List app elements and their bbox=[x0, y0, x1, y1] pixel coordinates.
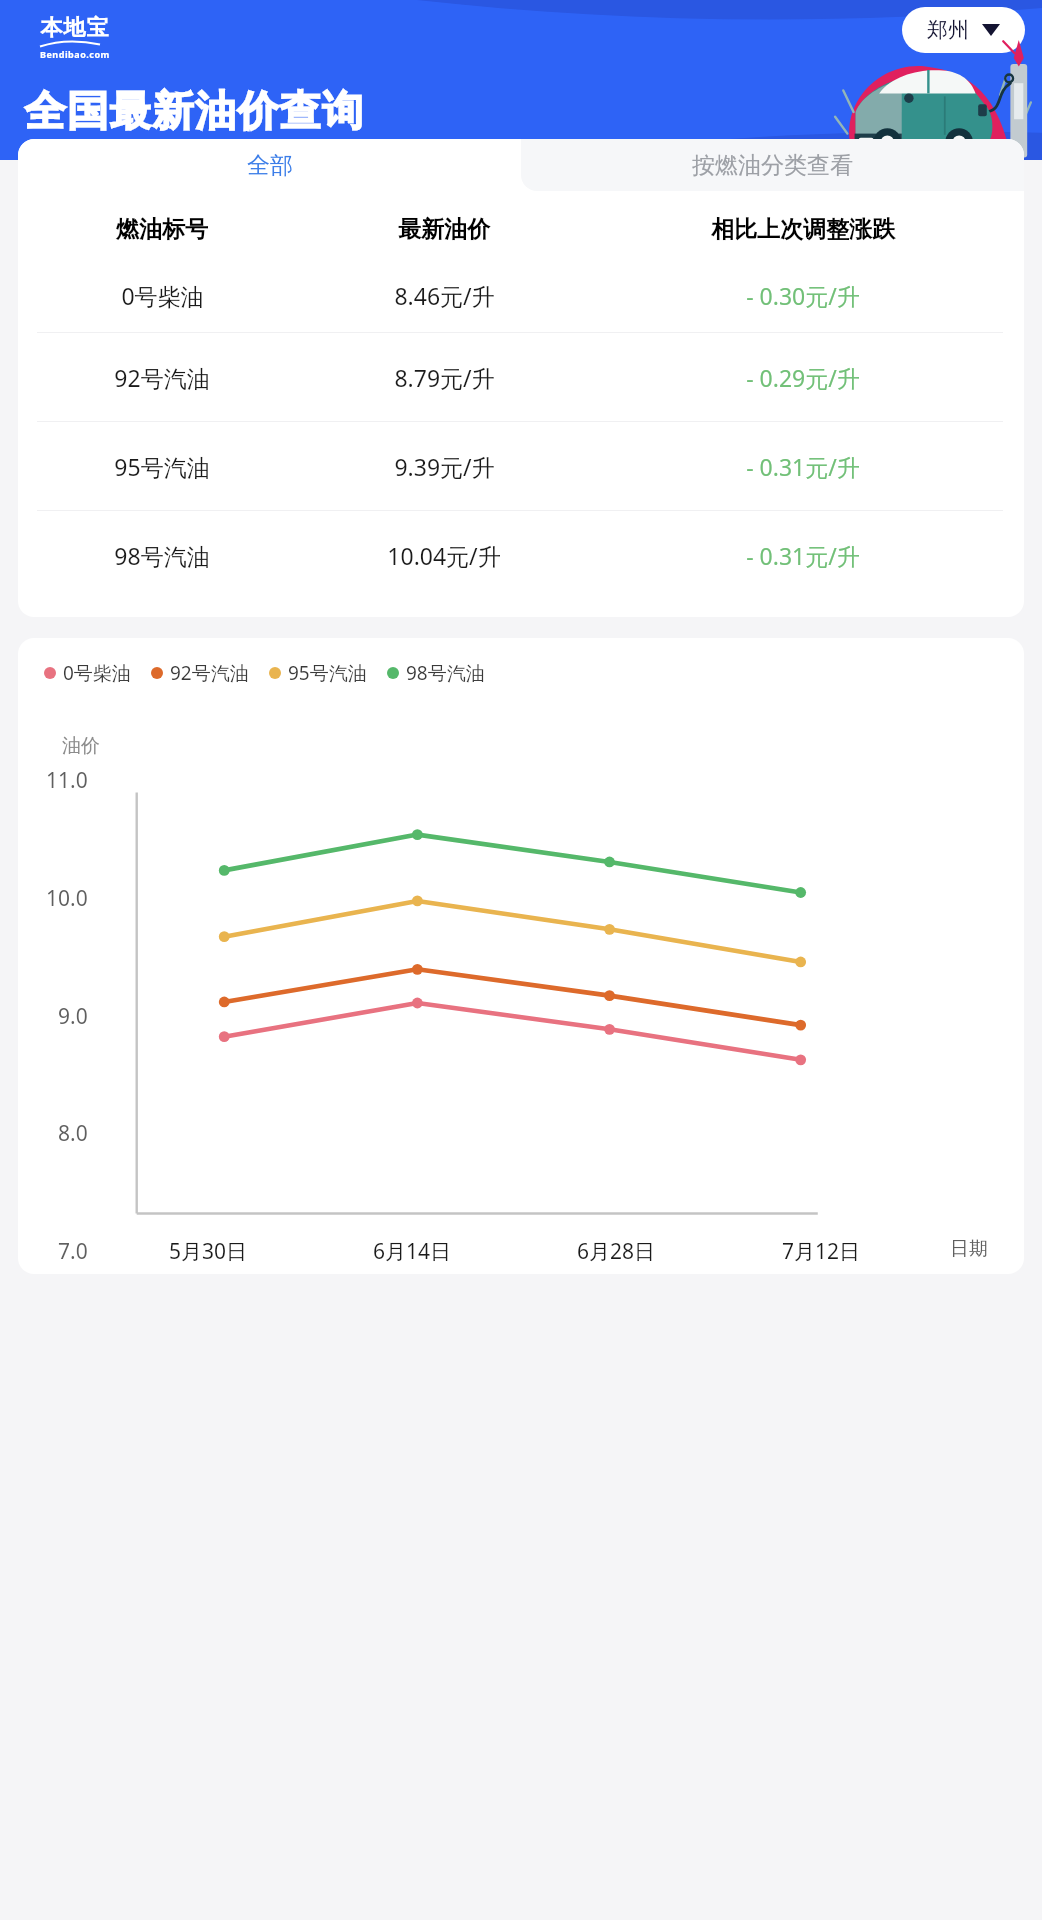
staticText: - 0.31元/升 bbox=[746, 540, 860, 571]
staticText: 95号汽油 bbox=[114, 451, 210, 482]
staticText: 日期 bbox=[950, 1237, 988, 1261]
other: Select city bbox=[982, 24, 1000, 36]
staticText: 10.0 bbox=[46, 884, 88, 913]
staticText: 最新油价 bbox=[398, 215, 490, 244]
staticText: 7.0 bbox=[58, 1237, 88, 1266]
staticText: 0号柴油 bbox=[121, 280, 204, 311]
button[interactable]: 全部 bbox=[18, 139, 521, 191]
staticText: Bendibao.com bbox=[40, 48, 110, 60]
staticText: 6月14日 bbox=[373, 1237, 452, 1266]
staticText: - 0.29元/升 bbox=[746, 362, 860, 393]
staticText: 5月30日 bbox=[169, 1237, 248, 1266]
staticText: 9.0 bbox=[58, 1002, 88, 1031]
staticText: 7月12日 bbox=[782, 1237, 861, 1266]
staticText: 8.0 bbox=[58, 1119, 88, 1148]
staticText: 98号汽油 bbox=[406, 660, 485, 686]
staticText: - 0.31元/升 bbox=[746, 451, 860, 482]
staticText: 9.39元/升 bbox=[394, 451, 495, 482]
staticText: 10.04元/升 bbox=[387, 540, 501, 571]
staticText: 燃油标号 bbox=[116, 215, 208, 244]
button[interactable]: 95号汽油 bbox=[18, 422, 1024, 510]
staticText: 92号汽油 bbox=[170, 660, 249, 686]
staticText: 按燃油分类查看 bbox=[692, 151, 853, 180]
staticText: 0号柴油 bbox=[63, 660, 131, 686]
staticText: 95号汽油 bbox=[288, 660, 367, 686]
staticText: 本地宝 bbox=[40, 14, 109, 42]
staticText: - 0.30元/升 bbox=[746, 280, 860, 311]
staticText: 8.46元/升 bbox=[394, 280, 495, 311]
button[interactable]: 98号汽油 bbox=[18, 511, 1024, 599]
staticText: 98号汽油 bbox=[114, 540, 210, 571]
staticText: 全部 bbox=[247, 151, 293, 180]
staticText: 8.79元/升 bbox=[394, 362, 495, 393]
staticText: 郑州 bbox=[927, 17, 969, 43]
staticText: 92号汽油 bbox=[114, 362, 210, 393]
staticText: 6月28日 bbox=[577, 1237, 656, 1266]
button[interactable]: 郑州 bbox=[902, 7, 1025, 53]
button[interactable]: 0号柴油 bbox=[18, 258, 1024, 332]
staticText: 相比上次调整涨跌 bbox=[711, 215, 895, 244]
staticText: 11.0 bbox=[46, 766, 88, 795]
button[interactable]: 按燃油分类查看 bbox=[521, 139, 1024, 191]
staticText: 全国最新油价查询 bbox=[24, 86, 364, 138]
staticText: 油价 bbox=[62, 734, 100, 758]
button[interactable]: 92号汽油 bbox=[18, 333, 1024, 421]
